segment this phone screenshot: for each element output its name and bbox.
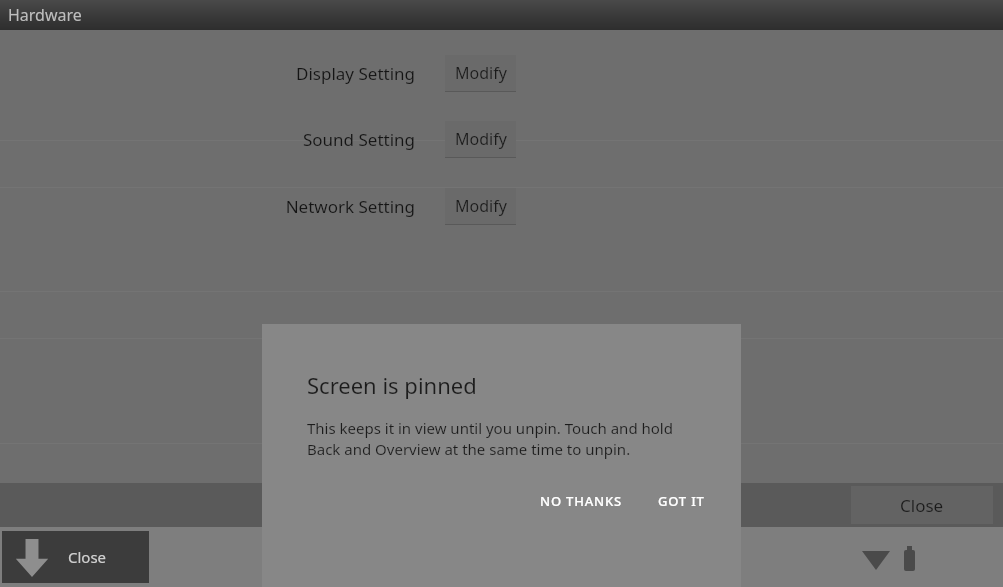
staticText: Close <box>900 494 944 517</box>
staticText: NO THANKS <box>540 492 622 510</box>
staticText: This keeps it in view until you unpin. T… <box>307 418 673 460</box>
staticText: Display Setting <box>255 62 415 85</box>
staticText: Modify <box>455 195 507 217</box>
button[interactable]: Close <box>851 486 993 524</box>
staticText: Sound Setting <box>255 128 415 151</box>
button[interactable]: NO THANKS <box>532 486 630 516</box>
button[interactable]: Modify <box>445 55 516 91</box>
staticText: Network Setting <box>255 195 415 218</box>
button[interactable]: Close <box>2 531 149 583</box>
staticText: Hardware <box>8 4 82 26</box>
button[interactable]: Modify <box>445 121 516 157</box>
button[interactable]: Modify <box>445 188 516 224</box>
staticText: GOT IT <box>658 492 705 510</box>
staticText: Screen is pinned <box>307 370 477 400</box>
button[interactable]: GOT IT <box>650 486 713 516</box>
staticText: Modify <box>455 62 507 84</box>
staticText: Modify <box>455 128 507 150</box>
staticText: Close <box>68 547 107 567</box>
